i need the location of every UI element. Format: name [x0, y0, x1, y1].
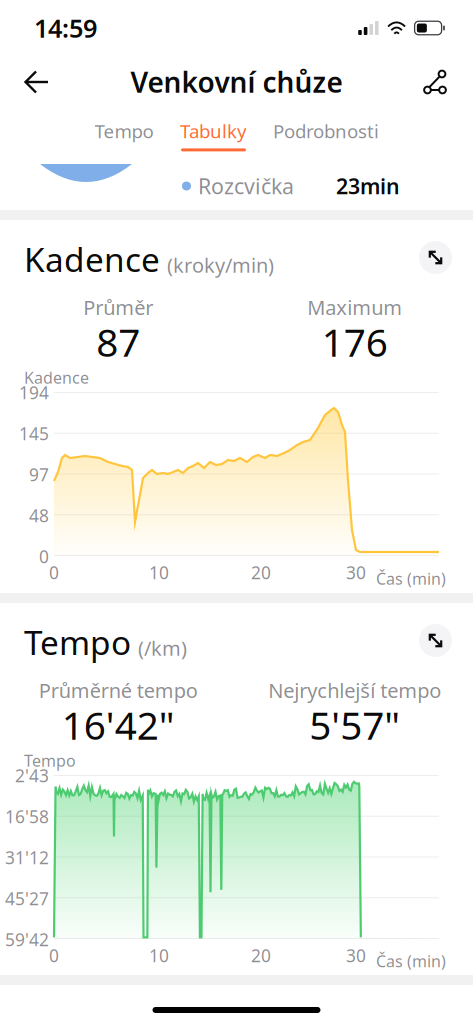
staticText: Kadence: [24, 367, 89, 388]
staticText: 16'58: [5, 805, 49, 828]
staticText: 97: [29, 463, 49, 486]
button[interactable]: Podrobnosti: [273, 118, 379, 152]
staticText: 59'42: [5, 928, 49, 951]
button[interactable]: Tabulky: [180, 118, 247, 152]
staticText: 14:59: [34, 11, 97, 45]
staticText: Tabulky: [180, 119, 247, 143]
staticText: 10: [149, 561, 169, 584]
staticText: 20: [251, 944, 271, 967]
staticText: Tempo: [24, 750, 76, 771]
staticText: Průměr: [83, 294, 153, 321]
staticText: 48: [29, 504, 49, 527]
staticText: 31'12: [5, 846, 49, 869]
staticText: 30: [346, 561, 366, 584]
staticText: Venkovní chůze: [130, 63, 342, 101]
staticText: 0: [49, 561, 59, 584]
staticText: 176: [322, 316, 388, 367]
staticText: 194: [19, 381, 49, 404]
staticText: 45'27: [5, 887, 49, 910]
staticText: Čas (min): [376, 568, 446, 589]
staticText: Tempo: [24, 620, 131, 664]
staticText: 20: [251, 561, 271, 584]
staticText: 23min: [336, 172, 400, 200]
staticText: 30: [346, 944, 366, 967]
staticText: 5'57": [309, 699, 400, 750]
staticText: Maximum: [307, 294, 402, 321]
staticText: 0: [39, 545, 49, 568]
staticText: 87: [96, 316, 140, 367]
staticText: 16'42": [62, 699, 175, 750]
button[interactable]: Tempo: [94, 118, 154, 152]
staticText: 145: [19, 422, 49, 445]
staticText: Tempo: [94, 119, 153, 143]
staticText: 2'43: [15, 764, 49, 787]
button[interactable]: Expand chart: [419, 624, 452, 657]
staticText: Průměrné tempo: [39, 677, 198, 704]
button[interactable]: Share: [412, 58, 460, 106]
staticText: Rozcvička: [198, 172, 294, 200]
button[interactable]: Back: [13, 58, 61, 106]
staticText: Podrobnosti: [273, 119, 379, 143]
staticText: Kadence: [24, 237, 160, 281]
staticText: Čas (min): [376, 950, 446, 972]
staticText: (kroky/min): [167, 252, 274, 278]
button[interactable]: Expand chart: [419, 241, 452, 274]
staticText: Nejrychlejší tempo: [268, 677, 441, 704]
staticText: 0: [49, 944, 59, 967]
staticText: (/km): [138, 635, 187, 661]
staticText: 10: [149, 944, 169, 967]
